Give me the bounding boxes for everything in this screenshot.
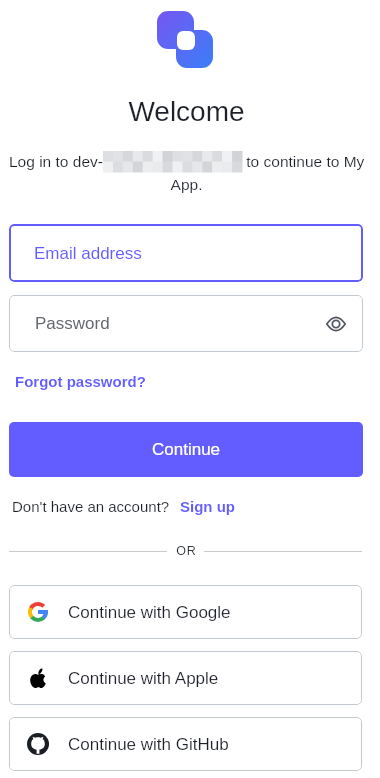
staticText: OR <box>0 544 373 558</box>
staticText: Continue <box>152 440 221 459</box>
staticText: to continue to My <box>242 153 365 170</box>
staticText: Welcome <box>0 96 373 127</box>
staticText: Continue with Apple <box>68 669 219 688</box>
staticText: Log in to dev- <box>9 153 103 170</box>
button[interactable]: Continue <box>9 422 363 477</box>
staticText: Continue with Google <box>68 603 231 622</box>
staticText: Don't have an account? <box>12 498 170 515</box>
button[interactable]: Email address <box>9 224 363 282</box>
button[interactable]: Continue with GitHub <box>9 717 362 771</box>
staticText: Password <box>35 314 110 333</box>
staticText: Email address <box>34 244 142 263</box>
button[interactable]: Password <box>9 295 363 352</box>
staticText: App. <box>0 176 373 193</box>
button[interactable]: Continue with Apple <box>9 651 362 705</box>
button[interactable]: Sign up <box>180 498 235 515</box>
staticText: Continue with GitHub <box>68 735 229 754</box>
button[interactable]: Forgot password? <box>15 373 146 390</box>
button[interactable]: Continue with Google <box>9 585 362 639</box>
button[interactable] <box>326 317 346 331</box>
